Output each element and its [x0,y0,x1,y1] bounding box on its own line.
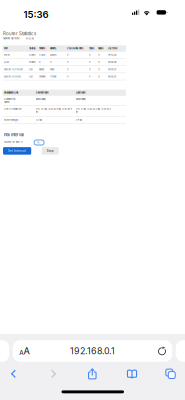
staticText: Up [29,68,32,71]
staticText: Connection Speed [4,98,15,103]
staticText: 177966 [50,75,56,78]
staticText: TxB/s [89,47,94,50]
staticText: 0 [67,75,68,78]
staticText: Broadband Link [4,91,18,94]
staticText: Up [29,75,32,78]
staticText: 0 [67,54,68,56]
button[interactable]: Stop [42,147,59,155]
staticText: US1 7.1 dB, US2 22.2 dB, US3 32.0 dB [75,108,110,113]
staticText: 04:53:27 [108,68,116,71]
staticText: RxPkts [50,47,56,50]
staticText: Line Attenuation [4,108,21,110]
staticText: WLAN (2.4 GHz) [4,68,23,71]
staticText: Upstream [75,91,85,94]
staticText: Down [29,54,35,56]
staticText: 0 [89,61,90,63]
staticText: 5953 [50,68,54,71]
staticText: DS1 17.1 dB, DS2 25.8 dB, DS3 38.4 dB [35,108,71,113]
button[interactable]: Forward [41,365,65,383]
button[interactable]: Back [1,365,25,383]
staticText: 6.4 dB [75,119,81,121]
staticText: Stop [47,149,54,153]
button[interactable]: Share [80,365,104,383]
staticText: WAN [4,54,10,56]
staticText: 0 [39,61,40,63]
staticText: Collisions Pkts [67,47,83,50]
staticText: 0 [50,61,51,63]
button[interactable]: Bookmarks [120,365,144,383]
staticText: 0 [89,68,90,71]
staticText: 04:53:27 [108,75,116,78]
staticText: 04:53:28 [108,61,116,63]
staticText: 0 [89,75,90,78]
staticText: A [19,349,23,356]
staticText: System Up Time [3,37,19,40]
staticText: 04:53:28 [108,54,116,56]
staticText: 04:53:28 [25,37,33,40]
staticText: Down [29,61,35,63]
staticText: 0 [67,68,68,71]
staticText: 205070 [50,54,56,56]
staticText: 0 [89,54,90,56]
button[interactable]: Tabs [158,365,182,383]
staticText: A [23,345,29,356]
staticText: LAN [4,61,9,63]
staticText: 173620 [39,54,45,56]
button[interactable]: Text size and page settings [14,340,34,362]
staticText: 370464 [39,75,45,78]
staticText: Up Time [108,47,117,50]
staticText: Set Interval [8,149,26,153]
staticText: WLAN (5 GHz) [4,75,21,78]
staticText: 5.6 dB [35,119,41,121]
staticText: Seconds (at least 5) [4,141,23,143]
staticText: 58416 kbps [35,98,45,100]
staticText: 192.168.0.1 [70,346,115,356]
staticText: RxB/s [98,47,103,50]
staticText: 0 [98,61,99,63]
staticText: 0 [98,68,99,71]
staticText: TxPkts [39,47,45,50]
staticText: Status [29,47,35,50]
staticText: 15:36 [23,9,48,20]
staticText: 0 [67,61,68,63]
staticText: 20033 kbps [75,98,85,100]
staticText: 0 [98,54,99,56]
staticText: Noise Margin [4,119,18,121]
staticText: 0 [98,75,99,78]
staticText: Router Statistics [3,31,36,36]
staticText: 10 [37,141,39,144]
staticText: Poll Interval [4,133,24,137]
staticText: Port [4,47,8,50]
staticText: 88322 [39,68,44,71]
button[interactable]: Reload page [152,340,172,362]
button[interactable]: Set Interval [3,147,31,155]
staticText: Downstream [35,91,48,94]
